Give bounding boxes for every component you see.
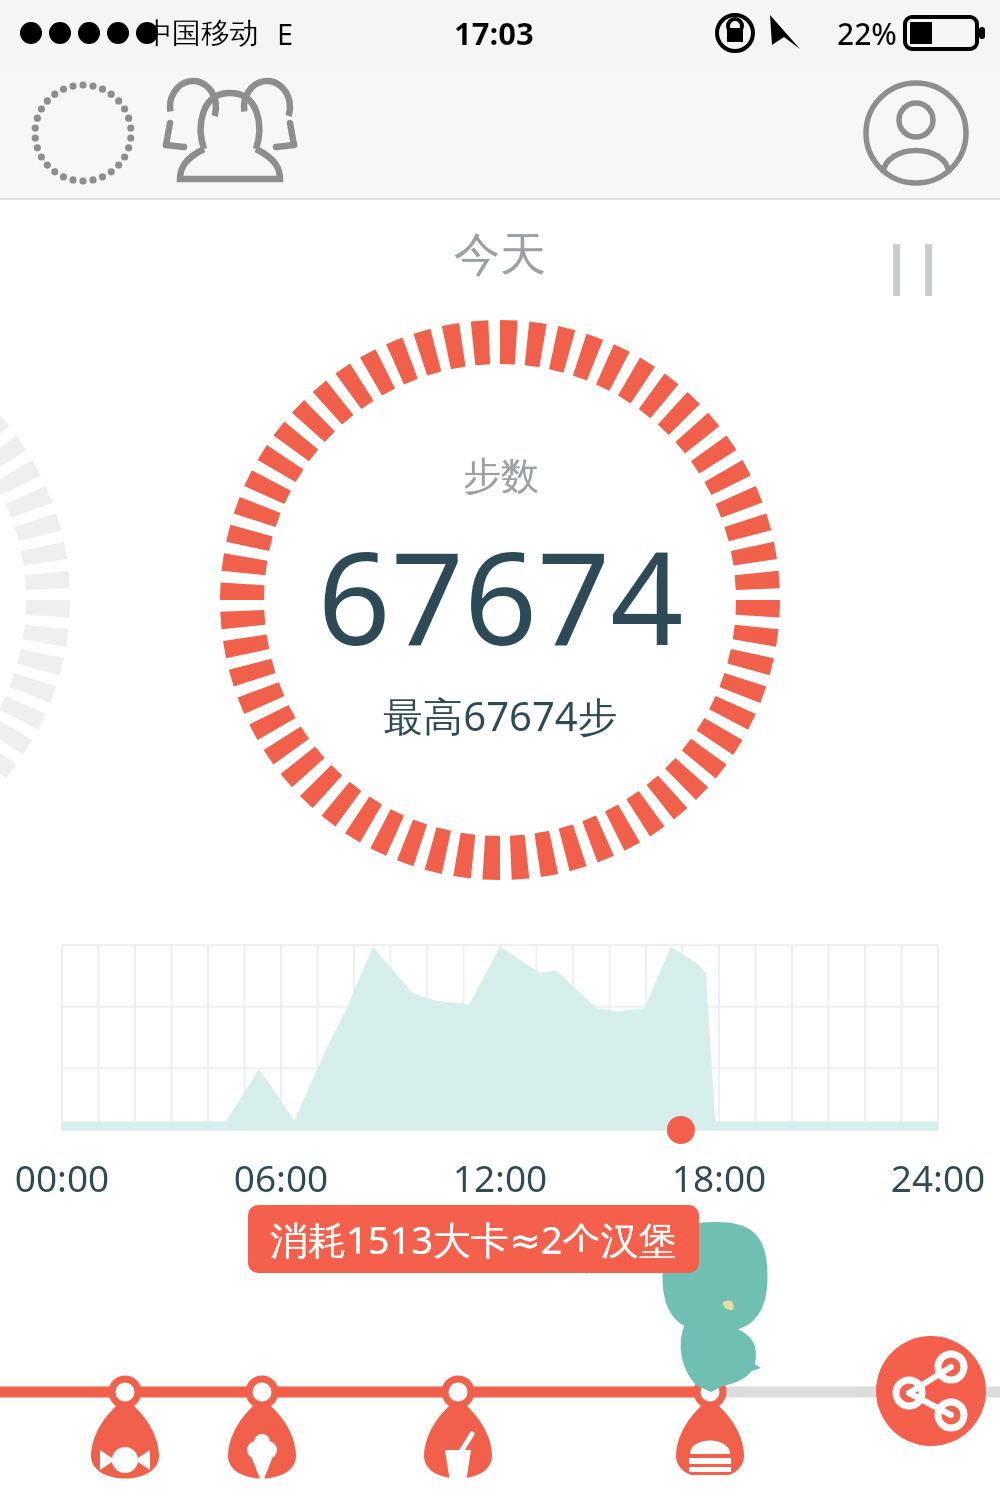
- button[interactable]: Share: [876, 1336, 986, 1446]
- button[interactable]: Friends: [170, 73, 290, 193]
- button[interactable]: Pause: [878, 224, 948, 294]
- staticText: 中国移动: [143, 15, 259, 52]
- button[interactable]: Profile: [862, 79, 970, 187]
- button[interactable]: Activity rings: [28, 78, 138, 188]
- staticText: 67674: [317, 508, 684, 682]
- staticText: 18:00: [647, 1152, 791, 1202]
- staticText: 06:00: [209, 1152, 353, 1202]
- staticText: 12:00: [428, 1152, 572, 1202]
- staticText: 24:00: [866, 1152, 1000, 1202]
- staticText: 最高67674步: [383, 688, 618, 743]
- staticText: 22%: [837, 13, 897, 54]
- staticText: E: [277, 14, 294, 53]
- staticText: 步数: [463, 452, 539, 500]
- staticText: 消耗1513大卡≈2个汉堡: [270, 1213, 677, 1265]
- staticText: 17:03: [454, 12, 534, 54]
- button[interactable]: 消耗1513大卡≈2个汉堡: [248, 1205, 699, 1273]
- staticText: 00:00: [0, 1152, 134, 1202]
- button[interactable]: 今天: [454, 226, 546, 284]
